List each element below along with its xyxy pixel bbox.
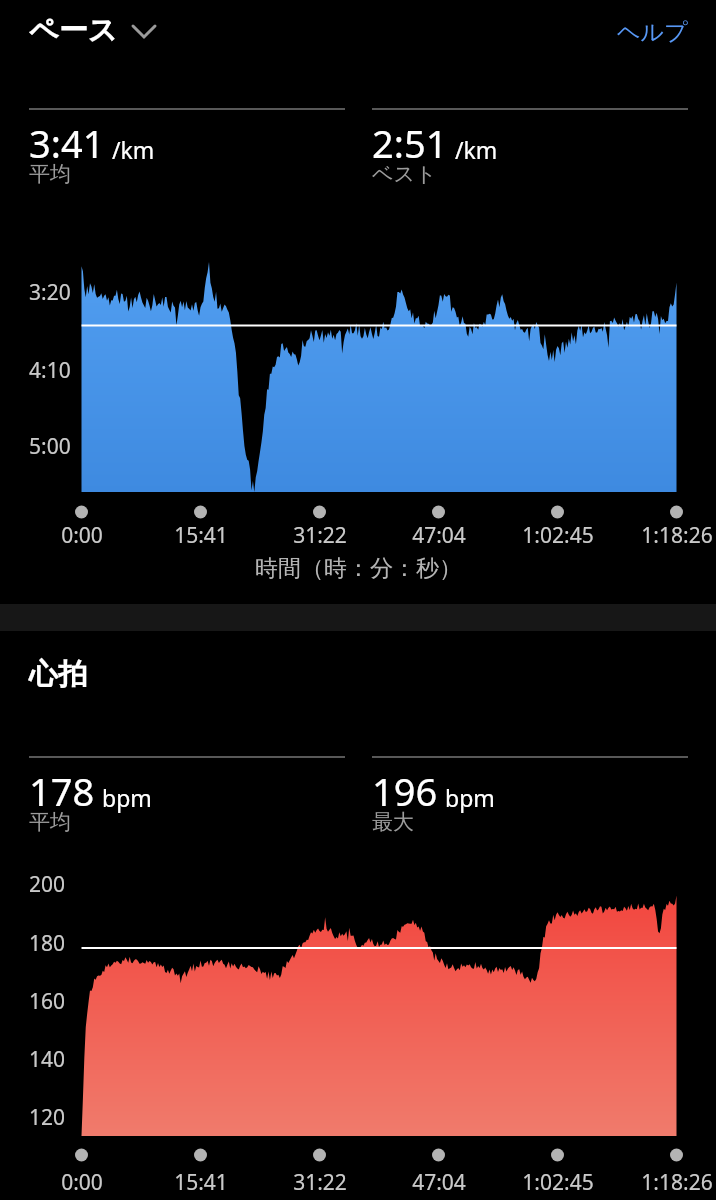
- staticText: 2:51: [372, 117, 448, 169]
- staticText: 1:02:45: [522, 521, 594, 550]
- staticText: 200: [29, 870, 66, 899]
- staticText: 心拍: [29, 656, 87, 693]
- staticText: 1:18:26: [641, 521, 713, 550]
- staticText: 3:41: [29, 117, 105, 169]
- staticText: ペース: [29, 12, 118, 49]
- staticText: 15:41: [174, 521, 228, 550]
- staticText: 平均: [29, 161, 71, 187]
- staticText: bpm: [445, 782, 495, 813]
- staticText: ヘルプ: [617, 18, 688, 47]
- staticText: 47:04: [412, 521, 466, 550]
- staticText: 15:41: [174, 1168, 228, 1197]
- staticText: 196: [372, 765, 438, 817]
- staticText: 1:18:26: [641, 1168, 713, 1197]
- staticText: 31:22: [293, 1168, 347, 1197]
- staticText: 178: [29, 765, 95, 817]
- staticText: ベスト: [372, 161, 437, 187]
- staticText: 0:00: [61, 521, 103, 550]
- staticText: 時間（時：分：秒）: [255, 554, 462, 583]
- button[interactable]: ヘルプ: [598, 18, 688, 47]
- staticText: 平均: [29, 809, 71, 835]
- staticText: 4:10: [29, 356, 71, 385]
- staticText: 180: [29, 929, 66, 958]
- staticText: 最大: [372, 809, 414, 835]
- staticText: 0:00: [61, 1168, 103, 1197]
- button[interactable]: ペース: [29, 12, 156, 49]
- staticText: bpm: [102, 782, 152, 813]
- staticText: 140: [29, 1045, 66, 1074]
- staticText: 5:00: [29, 432, 71, 461]
- staticText: 47:04: [412, 1168, 466, 1197]
- staticText: 160: [29, 987, 66, 1016]
- staticText: /km: [112, 134, 155, 165]
- staticText: 1:02:45: [522, 1168, 594, 1197]
- staticText: 31:22: [293, 521, 347, 550]
- staticText: /km: [455, 134, 498, 165]
- staticText: 120: [29, 1103, 66, 1132]
- staticText: 3:20: [29, 278, 71, 307]
